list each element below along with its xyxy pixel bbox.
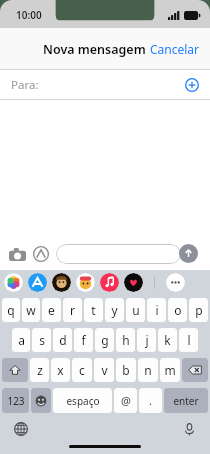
button[interactable]: b — [116, 358, 136, 382]
staticText: . — [149, 393, 152, 408]
button[interactable]: q — [2, 298, 20, 322]
staticText: p — [195, 302, 203, 318]
staticText: t — [91, 302, 96, 318]
staticText: 10:00 — [16, 8, 42, 22]
button[interactable]: d — [53, 328, 72, 352]
staticText: y — [111, 302, 118, 318]
staticText: s — [39, 332, 45, 348]
button[interactable]: Autocolantes — [76, 273, 95, 292]
button[interactable]: c — [72, 358, 92, 382]
staticText: r — [70, 302, 75, 318]
button[interactable]: j — [137, 328, 156, 352]
staticText: u — [132, 302, 140, 318]
button[interactable]: Memoji — [52, 273, 71, 292]
staticText: @ — [121, 393, 131, 408]
button[interactable]: Emoji — [31, 388, 51, 413]
button[interactable]: Cancelar — [140, 33, 210, 65]
staticText: h — [122, 332, 130, 348]
button[interactable]: n — [138, 358, 158, 382]
button[interactable]: Apagar — [182, 358, 208, 382]
button[interactable]: z — [30, 358, 49, 382]
staticText: c — [79, 362, 85, 378]
staticText: l — [187, 332, 191, 348]
button[interactable]: Para: — [0, 70, 210, 100]
button[interactable]: g — [95, 328, 114, 352]
staticText: g — [101, 332, 109, 348]
staticText: b — [122, 362, 130, 378]
button[interactable]: 123 — [2, 388, 29, 413]
staticText: espaço — [66, 394, 100, 408]
button[interactable]: Fotografias — [4, 273, 23, 292]
button[interactable]: y — [105, 298, 124, 322]
staticText: j — [145, 332, 149, 348]
staticText: Cancelar — [150, 41, 200, 57]
button[interactable]: Ditado — [180, 420, 198, 438]
button[interactable]: Adicionar contacto — [182, 75, 202, 95]
button[interactable]: . — [139, 388, 162, 413]
staticText: n — [144, 362, 152, 378]
staticText: enter — [173, 394, 199, 408]
button[interactable] — [56, 244, 181, 264]
button[interactable]: espaço — [53, 388, 112, 413]
button[interactable]: enter — [164, 388, 208, 413]
staticText: Nova mensagem — [43, 41, 146, 58]
button[interactable]: h — [116, 328, 135, 352]
staticText: z — [37, 362, 43, 378]
staticText: v — [101, 362, 108, 378]
staticText: w — [26, 302, 36, 318]
button[interactable]: App Store — [28, 273, 47, 292]
button[interactable]: m — [160, 358, 180, 382]
button[interactable]: Mudar idioma — [12, 420, 30, 438]
staticText: o — [174, 302, 182, 318]
button[interactable]: Mais — [166, 273, 185, 292]
button[interactable]: a — [12, 328, 30, 352]
button[interactable]: i — [147, 298, 166, 322]
button[interactable]: o — [168, 298, 187, 322]
button[interactable]: Enviar — [179, 244, 198, 263]
button[interactable]: f — [74, 328, 93, 352]
button[interactable]: @ — [114, 388, 137, 413]
staticText: k — [164, 332, 171, 348]
staticText: i — [155, 302, 159, 318]
button[interactable]: p — [189, 298, 208, 322]
staticText: m — [164, 362, 176, 378]
button[interactable]: w — [22, 298, 40, 322]
staticText: q — [7, 302, 15, 318]
staticText: a — [18, 332, 25, 348]
button[interactable]: s — [32, 328, 51, 352]
button[interactable]: l — [179, 328, 198, 352]
button[interactable]: u — [126, 298, 145, 322]
staticText: 123 — [7, 394, 25, 408]
staticText: f — [81, 332, 86, 348]
button[interactable]: e — [42, 298, 61, 322]
button[interactable]: r — [63, 298, 82, 322]
button[interactable]: Câmara — [7, 244, 27, 264]
staticText: d — [59, 332, 67, 348]
button[interactable]: x — [51, 358, 70, 382]
button[interactable]: App Store — [32, 245, 50, 263]
button[interactable]: k — [158, 328, 177, 352]
staticText: x — [57, 362, 64, 378]
button[interactable]: Shift — [2, 358, 28, 382]
staticText: Para: — [11, 77, 39, 93]
button[interactable]: Música — [100, 273, 119, 292]
button[interactable]: v — [94, 358, 114, 382]
button[interactable]: Fitness — [124, 273, 143, 292]
staticText: e — [48, 302, 55, 318]
button[interactable]: t — [84, 298, 103, 322]
